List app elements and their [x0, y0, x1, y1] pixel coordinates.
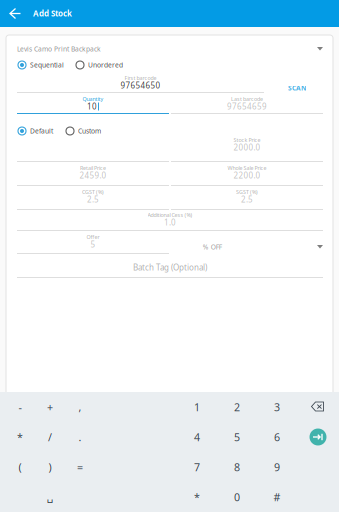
staticText: Default: [30, 127, 53, 135]
button[interactable]: 5: [217, 422, 257, 452]
staticText: (: [18, 460, 21, 474]
staticText: 4: [194, 430, 200, 444]
button[interactable]: 3: [257, 392, 297, 422]
button[interactable]: Back: [7, 5, 24, 22]
staticText: 2459.0: [79, 170, 106, 181]
staticText: /: [48, 430, 52, 444]
button[interactable]: ,: [65, 392, 95, 422]
staticText: Custom: [78, 127, 101, 135]
button[interactable]: (: [5, 452, 35, 482]
staticText: 5: [234, 430, 240, 444]
staticText: =: [77, 460, 83, 474]
staticText: SCAN: [288, 84, 306, 92]
button[interactable]: /: [35, 422, 65, 452]
staticText: -: [18, 400, 21, 414]
button[interactable]: *: [177, 482, 217, 512]
button[interactable]: Default: [17, 126, 53, 136]
staticText: 0: [234, 490, 240, 504]
staticText: SGST (%): [236, 188, 258, 196]
staticText: 6: [274, 430, 280, 444]
staticText: 2.5: [241, 194, 253, 205]
button[interactable]: 9: [257, 452, 297, 482]
staticText: Additional Cess (%): [147, 211, 192, 219]
button[interactable]: Backspace: [297, 392, 339, 422]
staticText: ,: [78, 400, 81, 414]
staticText: Offer: [86, 233, 99, 241]
button[interactable]: =: [65, 452, 95, 482]
button[interactable]: -: [5, 392, 35, 422]
button[interactable]: 2: [217, 392, 257, 422]
staticText: Retail Price: [80, 164, 106, 172]
button[interactable]: 0: [217, 482, 257, 512]
staticText: 2200.0: [233, 170, 260, 181]
staticText: *: [194, 490, 200, 504]
button[interactable]: Custom: [65, 126, 101, 136]
staticText: 10: [87, 101, 97, 112]
button[interactable]: 7: [177, 452, 217, 482]
staticText: Add Stock: [33, 8, 72, 19]
button[interactable]: 8: [217, 452, 257, 482]
staticText: .: [78, 430, 81, 444]
staticText: 2.5: [87, 194, 99, 205]
staticText: 7: [194, 460, 200, 474]
staticText: Unordered: [88, 61, 123, 69]
staticText: % OFF: [203, 243, 222, 251]
button[interactable]: #: [257, 482, 297, 512]
staticText: Quantity: [82, 95, 103, 103]
staticText: ␣: [46, 491, 53, 503]
staticText: *: [17, 430, 23, 444]
staticText: #: [273, 490, 280, 504]
staticText: 97654650: [120, 80, 160, 91]
staticText: 1.0: [164, 217, 176, 228]
button[interactable]: Levis Camo Print Backpack: [17, 45, 323, 53]
button[interactable]: Next: [297, 422, 339, 452]
staticText: 9: [274, 460, 280, 474]
staticText: CGST (%): [82, 188, 104, 196]
staticText: 3: [274, 400, 280, 414]
staticText: Sequential: [30, 61, 64, 69]
button[interactable]: +: [35, 392, 65, 422]
button[interactable]: 6: [257, 422, 297, 452]
staticText: ): [48, 460, 51, 474]
staticText: Last barcode: [231, 95, 263, 103]
button[interactable]: 4: [177, 422, 217, 452]
button[interactable]: Unordered: [75, 60, 123, 70]
staticText: Whole Sale Price: [227, 164, 266, 172]
button[interactable]: % OFF: [171, 243, 323, 251]
staticText: 5: [90, 239, 95, 250]
button[interactable]: SCAN: [271, 84, 323, 92]
staticText: 8: [234, 460, 240, 474]
button[interactable]: Sequential: [17, 60, 64, 70]
button[interactable]: ␣: [35, 482, 65, 512]
staticText: 1: [194, 400, 200, 414]
button[interactable]: *: [5, 422, 35, 452]
staticText: +: [47, 400, 53, 414]
staticText: Stock Price: [233, 136, 260, 144]
staticText: First barcode: [124, 74, 156, 82]
staticText: 97654659: [227, 101, 267, 112]
button[interactable]: 1: [177, 392, 217, 422]
staticText: Batch Tag (Optional): [133, 262, 207, 273]
staticText: Levis Camo Print Backpack: [17, 45, 101, 53]
button[interactable]: .: [65, 422, 95, 452]
staticText: 2: [234, 400, 240, 414]
button[interactable]: ): [35, 452, 65, 482]
staticText: 2000.0: [233, 142, 260, 153]
